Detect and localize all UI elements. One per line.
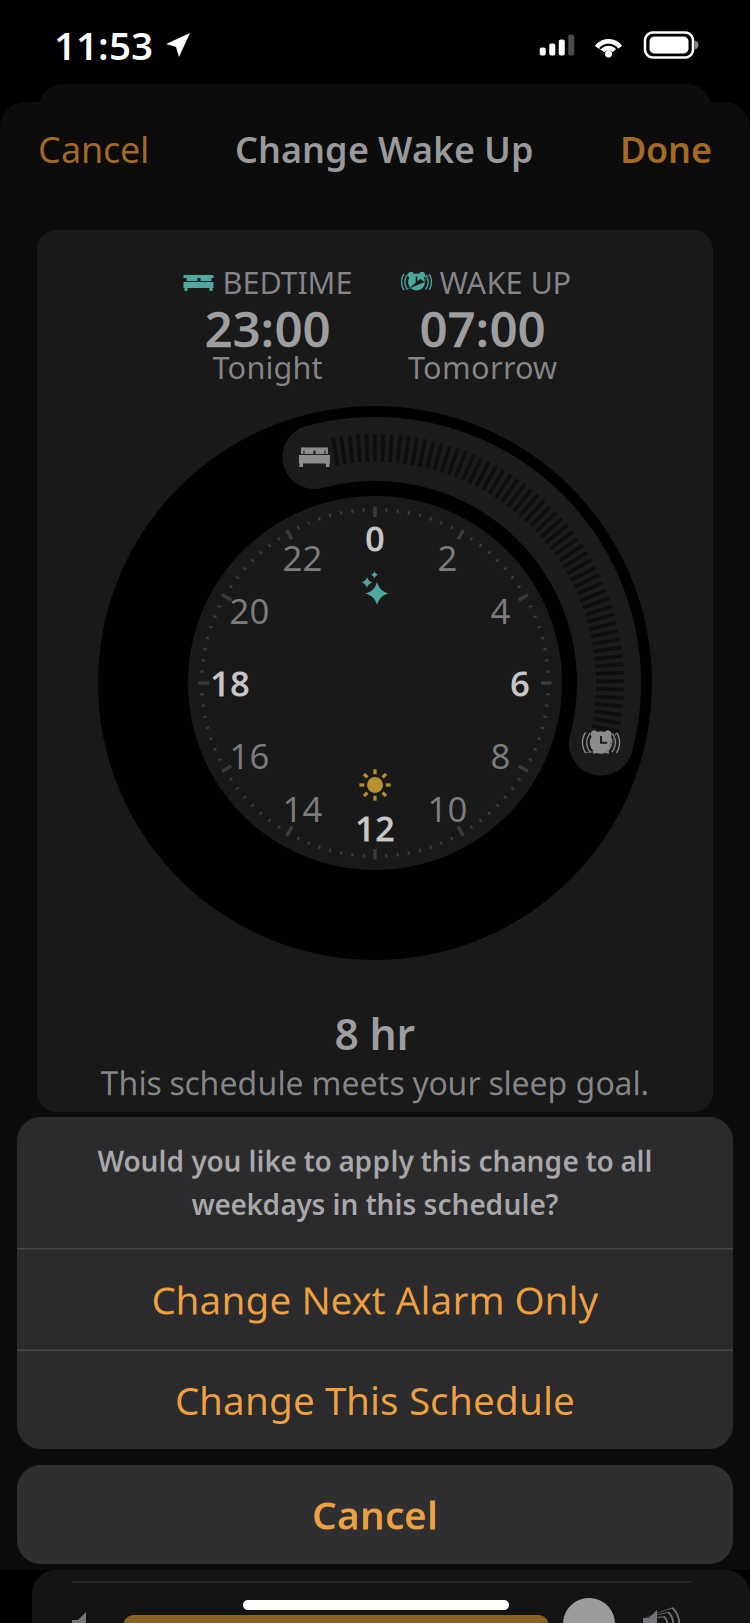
- staticText: Tonight: [212, 347, 322, 387]
- staticText: weekdays in this schedule?: [191, 1185, 558, 1223]
- staticText: 2: [437, 534, 457, 580]
- staticText: 07:00: [419, 295, 545, 361]
- staticText: 10: [427, 786, 467, 832]
- staticText: Change Wake Up: [235, 125, 534, 173]
- staticText: 6: [510, 660, 530, 706]
- staticText: Would you like to apply this change to a…: [97, 1142, 652, 1179]
- staticText: BEDTIME: [222, 262, 352, 302]
- staticText: 22: [282, 534, 322, 580]
- staticText: 20: [229, 587, 269, 633]
- staticText: 0: [365, 515, 385, 561]
- staticText: Tomorrow: [408, 347, 557, 387]
- staticText: 4: [491, 587, 511, 633]
- button[interactable]: Change Next Alarm Only: [17, 1249, 733, 1349]
- staticText: This schedule meets your sleep goal.: [100, 1062, 649, 1104]
- staticText: 8 hr: [334, 1005, 415, 1062]
- staticText: Change Next Alarm Only: [151, 1274, 598, 1325]
- staticText: 8: [491, 732, 511, 778]
- button[interactable]: Change This Schedule: [17, 1351, 733, 1449]
- staticText: Cancel: [38, 125, 149, 173]
- staticText: 16: [229, 732, 269, 778]
- staticText: Done: [620, 125, 712, 173]
- button[interactable]: Cancel: [38, 125, 149, 173]
- staticText: WAKE UP: [439, 262, 571, 302]
- staticText: 14: [282, 786, 322, 832]
- button[interactable]: Cancel: [17, 1465, 733, 1564]
- staticText: 11:53: [54, 19, 153, 71]
- staticText: 23:00: [204, 295, 330, 361]
- staticText: 18: [210, 660, 250, 706]
- button[interactable]: Done: [620, 125, 712, 173]
- staticText: 12: [355, 805, 395, 851]
- staticText: Cancel: [312, 1489, 438, 1540]
- staticText: Change This Schedule: [175, 1374, 575, 1426]
